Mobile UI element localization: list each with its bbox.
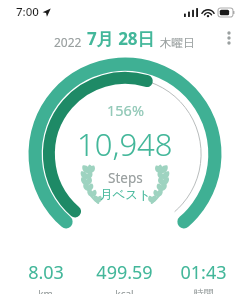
- button[interactable]: Step progress 156 percent: [27, 56, 223, 252]
- staticText: 時間: [194, 287, 214, 294]
- staticText: kcal: [115, 287, 134, 294]
- staticText: 7:00: [16, 4, 39, 20]
- staticText: 10,948: [77, 123, 173, 165]
- button[interactable]: 499.59: [85, 258, 164, 296]
- staticText: 156%: [107, 100, 144, 120]
- staticText: Steps: [108, 169, 143, 187]
- button[interactable]: More options: [216, 25, 242, 51]
- staticText: 木曜日: [160, 36, 195, 50]
- staticText: 499.59: [96, 260, 153, 285]
- staticText: 月ベスト: [100, 187, 151, 203]
- button[interactable]: 8.03: [6, 258, 85, 296]
- staticText: 2022: [54, 34, 82, 50]
- button[interactable]: 01:43: [164, 258, 243, 296]
- staticText: 8.03: [28, 260, 64, 285]
- staticText: km: [38, 287, 53, 294]
- staticText: 01:43: [180, 260, 227, 285]
- staticText: 7月 28日: [87, 27, 155, 50]
